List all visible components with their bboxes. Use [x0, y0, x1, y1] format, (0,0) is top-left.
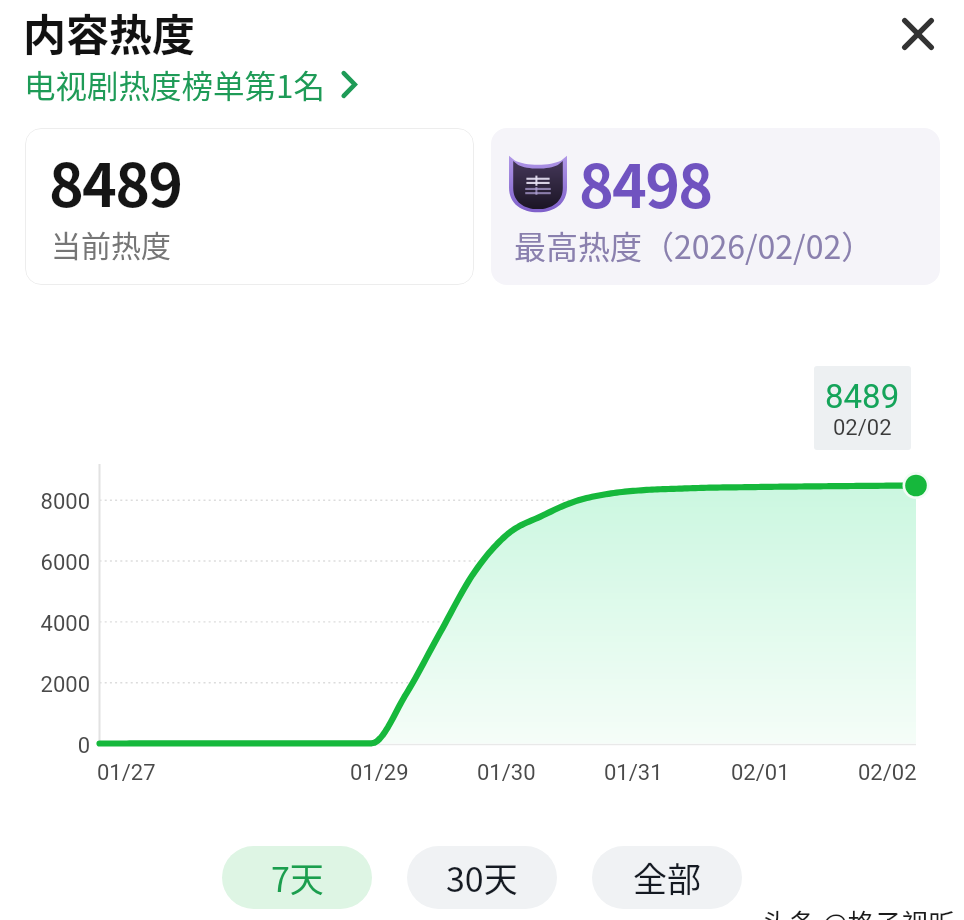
button[interactable]: 8498 — [491, 128, 940, 285]
staticText: 8000 — [40, 489, 90, 515]
button[interactable]: 全部 — [592, 846, 742, 909]
button[interactable]: 7天 — [222, 846, 372, 909]
button[interactable]: 8489 — [25, 128, 474, 285]
staticText: 8489 — [49, 139, 182, 224]
staticText: 当前热度 — [51, 222, 171, 265]
staticText: 全部 — [633, 853, 701, 902]
staticText: 6000 — [40, 550, 90, 576]
staticText: 最高热度（2026/02/02） — [514, 222, 874, 268]
staticText: 01/31 — [604, 760, 663, 786]
staticText: 0 — [77, 733, 90, 759]
staticText: 8489 — [825, 377, 900, 416]
button[interactable]: 30天 — [407, 846, 557, 909]
staticText: 01/29 — [350, 760, 409, 786]
button[interactable]: Close — [886, 2, 949, 65]
staticText: 02/02 — [858, 760, 917, 786]
staticText: 30天 — [446, 853, 518, 902]
staticText: 电视剧热度榜单第1名 — [24, 61, 325, 107]
button[interactable]: 电视剧热度榜单第1名 — [22, 59, 359, 109]
staticText: 01/30 — [477, 760, 536, 786]
staticText: 4000 — [40, 611, 90, 637]
staticText: 8498 — [579, 140, 712, 225]
staticText: 内容热度 — [23, 1, 195, 63]
staticText: 01/27 — [97, 760, 156, 786]
staticText: 7天 — [271, 853, 324, 902]
staticText: 头条 @格子视听 — [762, 903, 956, 920]
staticText: 02/02 — [833, 415, 892, 441]
staticText: 02/01 — [731, 760, 790, 786]
staticText: 2000 — [40, 672, 90, 698]
